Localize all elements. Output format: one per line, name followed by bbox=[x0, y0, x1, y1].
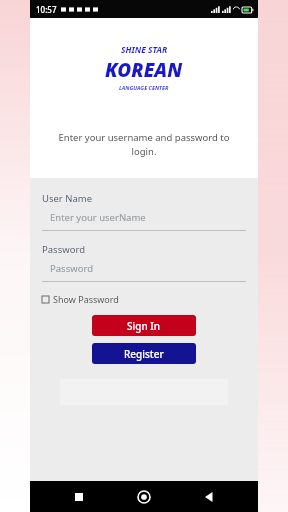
button[interactable]: Show Password bbox=[42, 291, 119, 307]
button[interactable]: Back bbox=[196, 484, 222, 510]
button[interactable]: Recents bbox=[66, 484, 92, 510]
staticText: User Name bbox=[42, 192, 93, 205]
staticText: Password bbox=[50, 262, 93, 275]
staticText: 10:57 bbox=[36, 4, 57, 15]
staticText: KOREAN bbox=[105, 57, 183, 83]
button[interactable]: Register bbox=[92, 343, 196, 364]
button[interactable]: Home bbox=[131, 484, 157, 510]
staticText: Password bbox=[42, 243, 85, 256]
staticText: SHINE STAR bbox=[121, 44, 168, 56]
staticText: Show Password bbox=[53, 293, 119, 305]
staticText: LANGUAGE CENTER bbox=[119, 84, 169, 91]
staticText: Register bbox=[124, 347, 164, 361]
staticText: Enter your userName bbox=[50, 211, 146, 224]
staticText: Sign In bbox=[127, 319, 161, 333]
staticText: Enter your username and password to logi… bbox=[56, 131, 232, 158]
button[interactable]: Password bbox=[42, 256, 246, 282]
button[interactable]: Enter your userName bbox=[42, 205, 246, 231]
button[interactable]: Sign In bbox=[92, 315, 196, 336]
